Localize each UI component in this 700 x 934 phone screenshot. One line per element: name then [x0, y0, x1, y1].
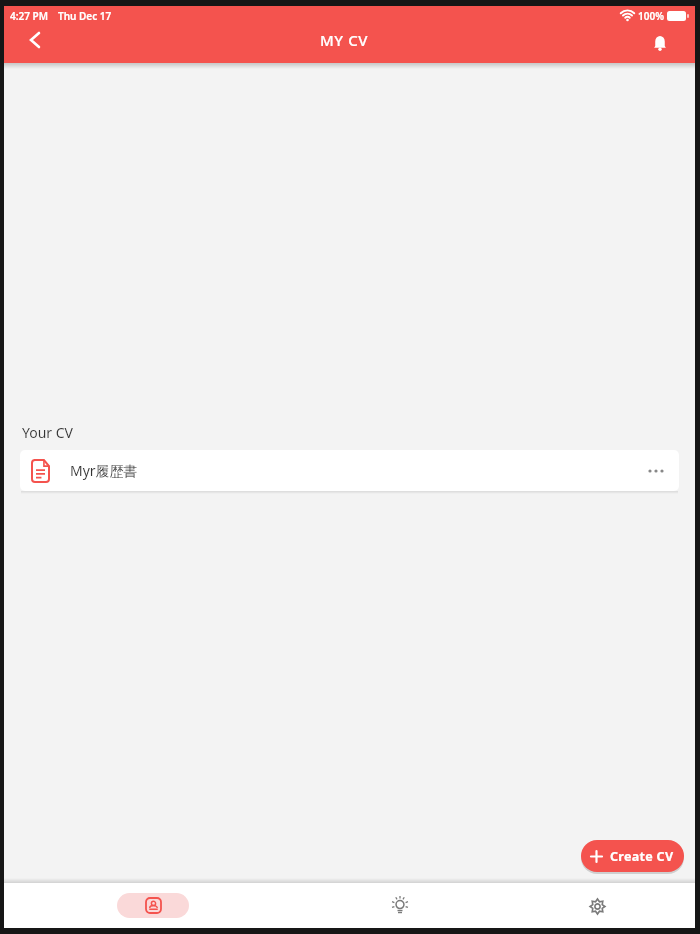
button[interactable] — [385, 891, 415, 921]
button[interactable] — [582, 891, 612, 921]
button[interactable]: Create CV — [581, 840, 684, 872]
staticText: 4:27 PM — [10, 9, 48, 23]
staticText: Thu Dec 17 — [58, 9, 112, 23]
staticText: Your CV — [22, 423, 74, 442]
button[interactable] — [647, 461, 667, 481]
button[interactable]: Myr履歴書 — [20, 450, 679, 491]
staticText: 100% — [638, 9, 664, 23]
staticText: Create CV — [610, 848, 674, 865]
button[interactable] — [117, 893, 189, 918]
button[interactable] — [20, 25, 50, 55]
button[interactable] — [647, 30, 673, 56]
staticText: Myr履歴書 — [70, 461, 138, 480]
staticText: MY CV — [320, 30, 369, 50]
